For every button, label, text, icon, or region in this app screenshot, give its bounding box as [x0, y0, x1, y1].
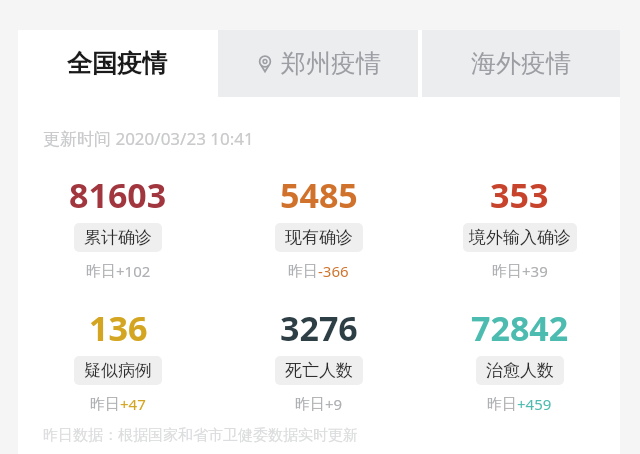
button[interactable]: 全国疫情: [18, 30, 215, 97]
staticText: 累计确诊: [84, 227, 152, 248]
staticText: 5485: [280, 172, 358, 218]
staticText: 治愈人数: [486, 360, 554, 381]
button[interactable]: 3276: [218, 305, 419, 414]
staticText: 昨日: [492, 262, 522, 281]
staticText: 死亡人数: [285, 360, 353, 381]
button[interactable]: 81603: [18, 172, 218, 281]
staticText: 昨日数据：根据国家和省市卫健委数据实时更新: [43, 426, 358, 445]
staticText: +47: [120, 394, 146, 414]
staticText: 郑州疫情: [281, 48, 381, 79]
button[interactable]: 353: [419, 172, 620, 281]
button[interactable]: 136: [18, 305, 218, 414]
staticText: +459: [517, 394, 552, 414]
staticText: 昨日: [86, 262, 116, 281]
button[interactable]: 海外疫情: [422, 30, 620, 97]
staticText: 72842: [471, 305, 569, 351]
staticText: 海外疫情: [471, 48, 571, 79]
button[interactable]: 5485: [218, 172, 419, 281]
button[interactable]: 72842: [419, 305, 620, 414]
staticText: 昨日: [487, 395, 517, 414]
staticText: +9: [325, 394, 343, 414]
staticText: 境外输入确诊: [469, 227, 571, 248]
staticText: -366: [318, 261, 349, 281]
staticText: 现有确诊: [285, 227, 353, 248]
staticText: 353: [490, 172, 549, 218]
staticText: 全国疫情: [67, 48, 167, 79]
staticText: +102: [116, 261, 151, 281]
staticText: 136: [89, 305, 148, 351]
staticText: 昨日: [295, 395, 325, 414]
staticText: 昨日: [288, 262, 318, 281]
staticText: +39: [522, 261, 548, 281]
button[interactable]: 郑州疫情: [218, 30, 418, 97]
staticText: 81603: [69, 172, 167, 218]
staticText: 疑似病例: [84, 360, 152, 381]
staticText: 昨日: [90, 395, 120, 414]
staticText: 3276: [280, 305, 358, 351]
staticText: 更新时间 2020/03/23 10:41: [43, 127, 254, 150]
